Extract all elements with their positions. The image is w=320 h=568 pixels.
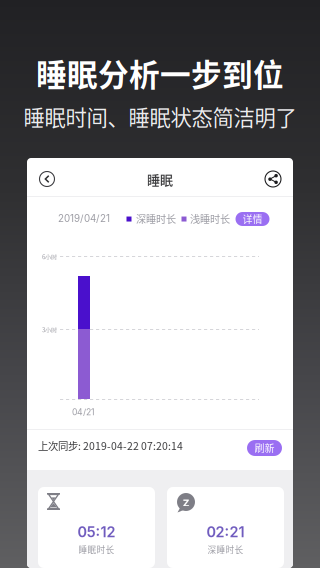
staticText: 睡眠 [147,169,173,188]
staticText: 02:21 [206,523,244,541]
staticText: 3小时 [42,325,57,334]
staticText: 2019/04/21 [58,213,110,224]
button[interactable]: 05:12 [38,487,155,568]
button[interactable]: Share [261,167,285,191]
staticText: 上次同步: 2019-04-22 07:20:14 [38,438,183,453]
staticText: 深睡时长 [207,543,243,556]
button[interactable]: z [167,487,284,568]
button[interactable]: 详情 [235,212,269,226]
staticText: 04/21 [72,407,95,417]
staticText: 深睡时长 [136,211,176,226]
staticText: 05:12 [77,523,115,541]
button[interactable]: 刷新 [247,440,282,456]
staticText: 睡眠时间、睡眠状态简洁明了 [23,101,296,132]
staticText: 详情 [242,212,262,226]
staticText: 刷新 [254,441,274,455]
staticText: 6小时 [42,252,57,261]
button[interactable]: Back [35,167,59,191]
staticText: 睡眠时长 [78,543,114,556]
staticText: 睡眠分析一步到位 [36,51,284,95]
staticText: z [182,494,189,509]
staticText: 浅睡时长 [190,211,230,226]
